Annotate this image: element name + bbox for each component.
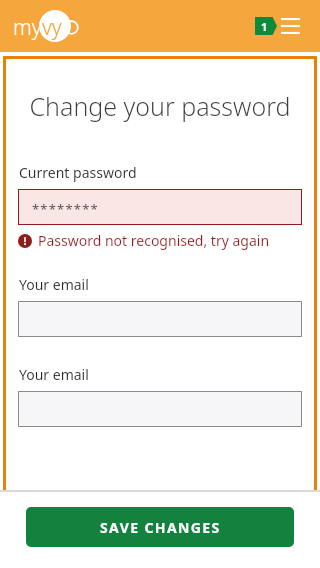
- staticText: vy: [42, 13, 62, 42]
- staticText: 1: [261, 19, 268, 34]
- button[interactable]: [18, 301, 302, 337]
- button[interactable]: Basket, 1 item: [255, 17, 277, 35]
- staticText: Current password: [19, 163, 137, 182]
- staticText: Your email: [19, 275, 89, 294]
- staticText: Change your password: [16, 89, 304, 123]
- staticText: my: [13, 13, 42, 42]
- staticText: ********: [32, 200, 99, 218]
- button[interactable]: SAVE CHANGES: [26, 507, 294, 547]
- staticText: Your email: [19, 365, 89, 384]
- button[interactable]: myvyo home: [13, 9, 85, 43]
- button[interactable]: ********: [18, 189, 302, 225]
- button[interactable]: [18, 391, 302, 427]
- button[interactable]: Menu: [281, 18, 300, 34]
- staticText: Password not recognised, try again: [38, 231, 270, 250]
- staticText: SAVE CHANGES: [100, 518, 221, 537]
